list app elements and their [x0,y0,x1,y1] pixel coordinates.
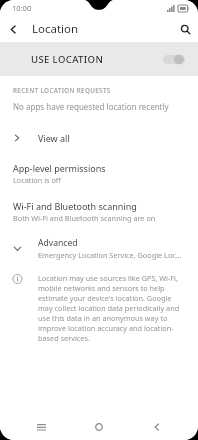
button[interactable]: Search [172,16,198,42]
staticText: Location [32,21,79,37]
staticText: Emergency Location Service, Google Locat… [38,250,185,260]
staticText: Location may use sources like GPS, Wi-Fi… [38,273,183,343]
staticText: Wi-Fi and Bluetooth scanning [13,200,137,212]
button[interactable]: View all [0,128,198,148]
staticText: Advanced [38,237,78,249]
staticText: 10:00 [12,3,32,13]
button[interactable]: Advanced [0,237,198,260]
button[interactable]: Back [0,16,26,42]
button[interactable]: App-level permissions [0,162,198,185]
staticText: No apps have requested location recently [13,101,169,112]
button[interactable]: Back [140,414,174,440]
button[interactable]: Recents [24,414,58,440]
button[interactable]: Wi-Fi and Bluetooth scanning [0,200,198,223]
button[interactable]: Home [82,414,116,440]
staticText: USE LOCATION [31,53,163,66]
staticText: RECENT LOCATION REQUESTS [13,86,111,95]
staticText: App-level permissions [13,162,106,174]
staticText: Both Wi-Fi and Bluetooth scanning are on [13,213,156,223]
staticText: View all [38,132,70,144]
staticText: Location is off [13,175,61,185]
button[interactable]: USE LOCATION [0,42,198,76]
